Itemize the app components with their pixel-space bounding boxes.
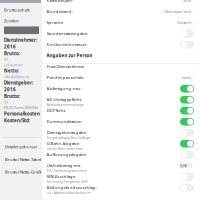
staticText: Deutsch [177,20,191,25]
button[interactable]: SFN-Zuschläge: [42,173,200,184]
staticText: › [193,63,194,69]
staticText: Abfertigung neu: [47,85,82,91]
staticText: Kosten/Std: [4,117,30,123]
staticText: Lohnsteuer: [4,63,23,67]
button[interactable]: DZ-Pflicht: [42,107,200,118]
staticText: Auflösungsabgabe: [47,151,87,157]
staticText: Angaben zur Person [47,52,93,58]
staticText: Oberösterreich [164,9,191,14]
staticText: SV [4,57,8,62]
button[interactable]: LSt-Freibetrag mit: [42,162,200,173]
staticText: keine [182,75,191,80]
button[interactable]: Stundensatzeingabe: [42,30,200,41]
staticText: Rechnung Freigrenze §68 [47,179,88,184]
button[interactable]: Auflösungsabgabe: [42,151,200,162]
staticText: DZ-Pflicht: [47,107,66,113]
staticText: Kommunalsteuer: [47,118,83,124]
staticText: Brutto/Netto-Grafik [5,169,42,175]
button[interactable]: Detailergebnisse [5,144,37,149]
staticText: DB,DZ,Komm,MVK/DGr [4,105,38,110]
staticText: nur für Wien berechnet [47,146,83,151]
staticText: Detailergebnisse [5,144,37,149]
staticText: › [193,74,194,80]
staticText: Stundensatzeingabe: [47,30,88,36]
staticText: für geringfügig Beschäftigte [47,135,91,140]
button[interactable]: AK-Umlagepflicht: [42,96,200,107]
button[interactable]: Angaben zur Person [42,52,200,63]
button[interactable]: Kalenderjahr: [42,0,200,8]
staticText: Bundesland: [47,8,73,14]
staticText: › [193,0,194,3]
button[interactable]: Abfertigung neu: [42,85,200,96]
button[interactable]: Brutto/Netto-Tabelle [5,157,44,162]
staticText: 2016 [4,87,16,93]
staticText: Personalkosten [4,111,40,117]
button[interactable]: Pendlerpauschale: [42,74,200,85]
staticText: › [193,52,194,58]
staticText: Zusätze: [4,18,19,23]
staticText: Dienstgeberabgabe: [47,129,87,135]
staticText: Dienstnehmer: [4,37,37,43]
button[interactable]: Bildungsfondszuschlag: [42,184,200,195]
staticText: B.K. Freibetragsbescheid [47,168,87,173]
staticText: Dienstgeber: [4,80,33,86]
staticText: Bruttogehalt: [4,7,30,13]
staticText: Bildungsfondszuschlag: [47,184,97,190]
button[interactable]: Sprache: [42,19,200,30]
staticText: Brutto/Netto-Tabelle [5,157,44,162]
staticText: Arbeiterkammerumlage [47,102,84,107]
button[interactable]: Konkurslohnsteuer: [42,41,200,52]
staticText: AK-Umlagepflicht: [47,96,82,102]
staticText: 2016 [4,44,16,50]
staticText: SV [4,100,8,105]
staticText: Sprache: [47,19,64,25]
staticText: 0,00 [180,163,187,168]
staticText: eNetto/Grenz-%: [4,75,30,79]
staticText: › [193,19,194,25]
staticText: U-Bahn Abgabe: [47,140,80,146]
button[interactable]: Freie Dienstnehmer [42,63,200,74]
staticText: LSt-Freibetrag mit: [47,162,81,168]
staticText: Netto: [4,68,19,74]
staticText: Brutto: [4,50,20,56]
staticText: Pendlerpauschale: [47,74,84,80]
button[interactable]: Kommunalsteuer: [42,118,200,129]
button[interactable]: Bundesland: [42,8,200,19]
staticText: Brutto: [4,93,20,99]
staticText: Konkurslohnsteuer: [47,41,88,47]
staticText: SFN-Zuschläge: [47,173,76,179]
button[interactable] [0,26,41,34]
button[interactable]: Dienstgeberabgabe: [42,129,200,140]
staticText: 2016 [183,0,191,3]
button[interactable]: Brutto/Netto-Grafik [5,169,42,175]
staticText: › [193,8,194,14]
staticText: u.a. Arbeitskräfteüberlasser [47,190,91,195]
button[interactable]: U-Bahn Abgabe: [42,140,200,151]
staticText: Freie Dienstnehmer [47,63,85,69]
staticText: Kalenderjahr: [47,0,74,3]
